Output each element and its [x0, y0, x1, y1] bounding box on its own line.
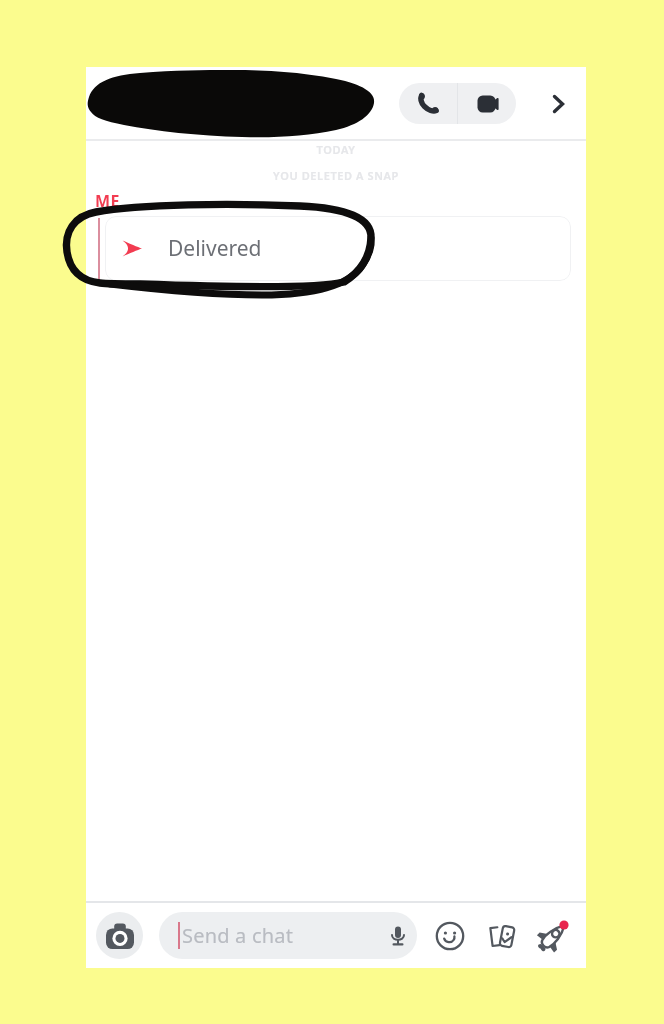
staticText: Send a chat	[182, 922, 294, 949]
staticText: Delivered	[168, 234, 262, 263]
staticText: ME	[95, 190, 120, 212]
button[interactable]: Video call	[458, 83, 516, 124]
staticText: TODAY	[86, 142, 586, 157]
staticText: YOU DELETED A SNAP	[86, 168, 586, 183]
button[interactable]: Games	[532, 915, 574, 957]
button[interactable]: Delivered	[105, 216, 571, 281]
button[interactable]: Open camera	[96, 912, 143, 959]
button[interactable]: Send a chat	[159, 912, 417, 959]
button[interactable]: Emoji	[429, 915, 471, 957]
button[interactable]: Voice message	[383, 921, 413, 951]
button[interactable]: Call	[399, 83, 457, 124]
button[interactable]: Stickers	[481, 915, 523, 957]
button[interactable]: Open profile	[536, 82, 580, 126]
